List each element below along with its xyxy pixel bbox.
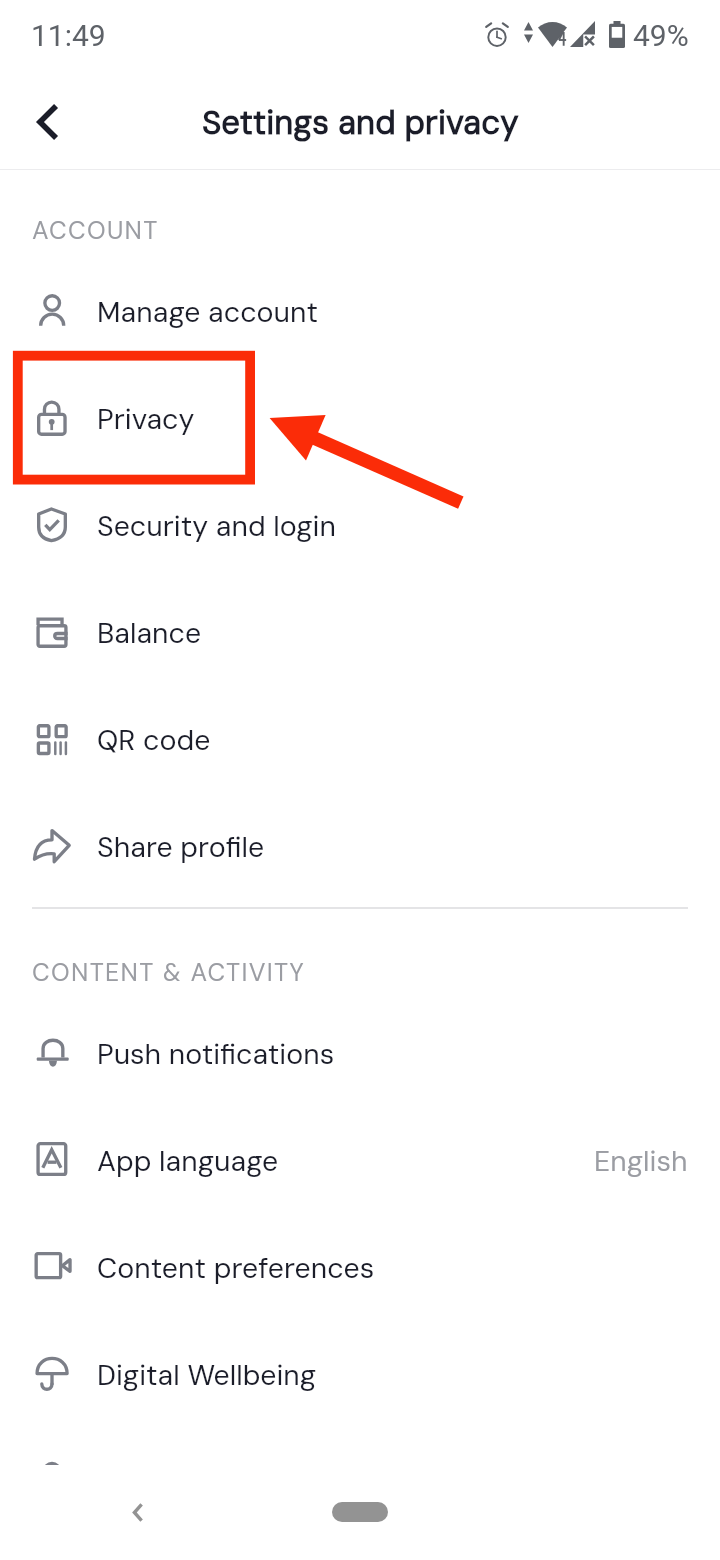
button[interactable]: Back (110, 1484, 166, 1540)
staticText: Share profile (97, 829, 265, 866)
staticText: App language (97, 1143, 279, 1180)
staticText: Security and login (97, 508, 336, 545)
staticText: 49% (633, 18, 689, 53)
staticText: Privacy (97, 401, 195, 438)
staticText: 11:49 (31, 18, 106, 53)
button[interactable]: Privacy (0, 366, 720, 473)
button[interactable]: Home (332, 1502, 388, 1522)
button[interactable]: Manage account (0, 259, 720, 366)
button[interactable]: Share profile (0, 794, 720, 901)
button[interactable]: Content preferences (0, 1215, 720, 1322)
button[interactable]: Balance (0, 580, 720, 687)
staticText: Settings and privacy (202, 101, 519, 144)
staticText: English (594, 1143, 688, 1180)
button[interactable]: App language (0, 1108, 720, 1215)
staticText: Balance (97, 615, 202, 652)
button[interactable]: Security and login (0, 473, 720, 580)
staticText: CONTENT & ACTIVITY (32, 956, 306, 989)
button[interactable]: Push notifications (0, 1001, 720, 1108)
button[interactable]: Back (0, 70, 92, 170)
staticText: Push notifications (97, 1036, 335, 1073)
staticText: QR code (97, 722, 211, 759)
button[interactable]: Family Pairing (0, 1429, 720, 1465)
staticText: Content preferences (97, 1250, 375, 1287)
staticText: Manage account (97, 294, 319, 331)
staticText: ACCOUNT (32, 214, 159, 247)
button[interactable]: Digital Wellbeing (0, 1322, 720, 1429)
button[interactable]: QR code (0, 687, 720, 794)
staticText: Digital Wellbeing (97, 1357, 317, 1394)
